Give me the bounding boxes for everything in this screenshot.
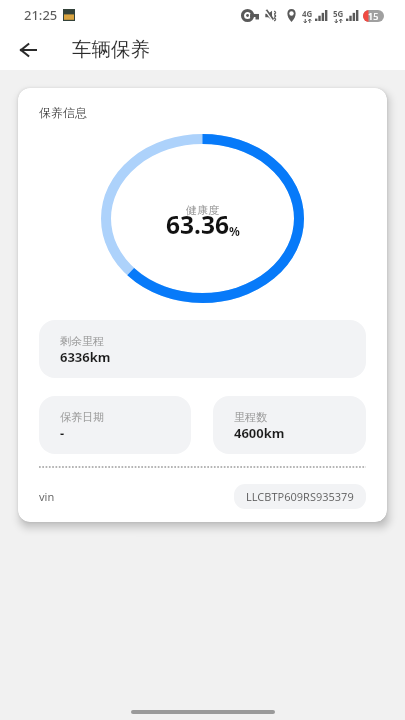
staticText: 21:25 (24, 6, 58, 24)
staticText: 4600km (234, 424, 285, 442)
staticText: 5G (333, 8, 344, 19)
staticText: LLCBTP609RS935379 (246, 489, 354, 504)
staticText: 15 (368, 10, 379, 22)
staticText: 健康度 (186, 203, 219, 217)
staticText: 里程数 (234, 410, 267, 424)
button[interactable]: 里程数 (213, 396, 366, 454)
staticText: % (229, 223, 240, 239)
button[interactable]: Back (12, 34, 44, 66)
staticText: 4G (302, 8, 313, 19)
staticText: 保养日期 (60, 410, 104, 424)
staticText: 6336km (60, 348, 111, 366)
staticText: 车辆保养 (72, 37, 150, 62)
button[interactable]: 保养日期 (39, 396, 191, 454)
staticText: 剩余里程 (60, 334, 104, 348)
staticText: 保养信息 (39, 105, 87, 120)
staticText: - (60, 424, 65, 442)
staticText: 63.36 (166, 208, 229, 241)
staticText: vin (39, 489, 55, 504)
button[interactable]: 剩余里程 (39, 320, 366, 378)
